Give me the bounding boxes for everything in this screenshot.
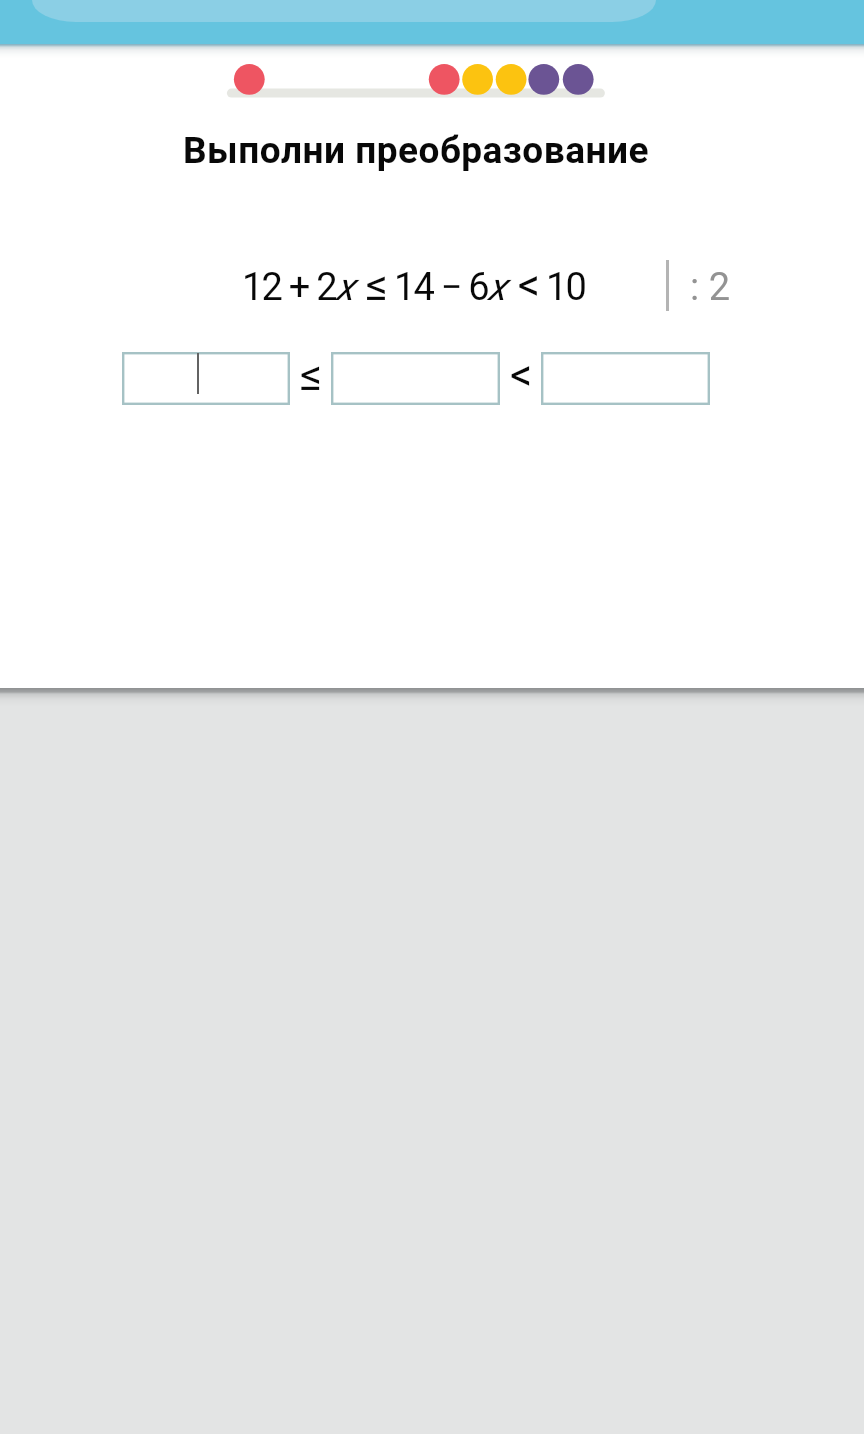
button[interactable]: Second answer field: [331, 352, 500, 405]
other: Lesson progress: [0, 60, 864, 100]
staticText: ≤: [300, 349, 323, 401]
button[interactable]: Third answer field: [541, 352, 710, 405]
button[interactable]: First answer field: [122, 352, 290, 405]
staticText: 12 + 2x ≤ 14 − 6x < 10: [242, 259, 586, 311]
staticText: Выполни преобразование: [183, 129, 650, 172]
staticText: : 2: [690, 265, 730, 310]
button[interactable]: App bar: [0, 0, 864, 44]
staticText: <: [510, 349, 533, 401]
